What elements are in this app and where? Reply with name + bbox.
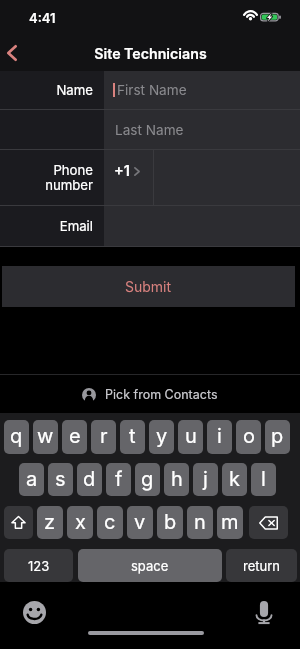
button[interactable]: t	[120, 420, 145, 454]
button[interactable]: Backspace	[249, 506, 288, 539]
staticText: Last Name	[115, 122, 184, 138]
button[interactable]: l	[251, 463, 276, 496]
staticText: x	[75, 510, 86, 534]
staticText: k	[229, 467, 240, 491]
staticText: y	[156, 424, 168, 448]
button[interactable]: e	[62, 420, 87, 454]
button[interactable]: First Name	[104, 71, 300, 109]
button[interactable]: Back	[0, 35, 36, 71]
button[interactable]: s	[48, 463, 73, 496]
staticText: p	[271, 424, 284, 448]
staticText: 4:41	[29, 10, 56, 26]
button[interactable]: a	[19, 463, 44, 496]
staticText: w	[37, 424, 54, 448]
button[interactable]: u	[178, 420, 203, 454]
staticText: Pick from Contacts	[105, 387, 218, 402]
button[interactable]: Dictate	[248, 596, 280, 628]
button[interactable]: n	[187, 506, 213, 539]
button[interactable]: Shift	[4, 506, 33, 539]
staticText: z	[44, 510, 56, 534]
staticText: Site Technicians	[94, 45, 207, 62]
button[interactable]: x	[67, 506, 93, 539]
staticText: h	[171, 467, 183, 491]
staticText: m	[221, 510, 239, 534]
button[interactable]: return	[226, 549, 297, 582]
staticText: s	[55, 467, 66, 491]
button[interactable]: z	[37, 506, 63, 539]
button[interactable]: k	[222, 463, 247, 496]
button[interactable]: space	[78, 549, 222, 582]
button[interactable]: y	[149, 420, 174, 454]
button[interactable]: +1	[104, 150, 300, 205]
staticText: j	[203, 467, 208, 491]
staticText: First Name	[117, 82, 187, 98]
button[interactable]: w	[33, 420, 58, 454]
staticText: space	[131, 558, 169, 574]
staticText: q	[10, 424, 23, 448]
button[interactable]: q	[4, 420, 29, 454]
staticText: r	[100, 424, 108, 448]
staticText: u	[185, 424, 197, 448]
staticText: return	[243, 558, 280, 574]
staticText: Phone number	[45, 162, 93, 194]
button[interactable]: j	[193, 463, 218, 496]
staticText: g	[141, 467, 154, 491]
button[interactable]: m	[217, 506, 243, 539]
staticText: 123	[28, 558, 50, 574]
button[interactable]: b	[157, 506, 183, 539]
button[interactable]: i	[207, 420, 232, 454]
staticText: c	[104, 510, 116, 534]
staticText: o	[243, 424, 255, 448]
staticText: v	[134, 510, 146, 534]
button[interactable]: d	[77, 463, 102, 496]
button[interactable]: Last Name	[104, 110, 300, 149]
staticText: +1	[114, 162, 130, 180]
staticText: l	[261, 467, 266, 491]
staticText: a	[26, 467, 38, 491]
button[interactable]: r	[91, 420, 116, 454]
button[interactable]: f	[106, 463, 131, 496]
button[interactable]: Emoji keyboard	[18, 596, 50, 628]
staticText: f	[115, 467, 123, 491]
button[interactable]: c	[97, 506, 123, 539]
staticText: n	[194, 510, 206, 534]
button[interactable]: 123	[4, 549, 73, 582]
button[interactable]: h	[164, 463, 189, 496]
staticText: d	[83, 467, 96, 491]
staticText: e	[69, 424, 81, 448]
button[interactable]: Submit	[2, 266, 295, 307]
staticText: Submit	[125, 278, 172, 295]
button[interactable]: g	[135, 463, 160, 496]
staticText: t	[129, 424, 136, 448]
staticText: b	[164, 510, 177, 534]
button[interactable]: v	[127, 506, 153, 539]
staticText: Email	[59, 218, 93, 234]
button[interactable]: Pick from Contacts	[82, 387, 218, 402]
button[interactable]: o	[236, 420, 261, 454]
button[interactable]: p	[265, 420, 290, 454]
staticText: i	[217, 424, 222, 448]
staticText: Name	[56, 82, 93, 98]
